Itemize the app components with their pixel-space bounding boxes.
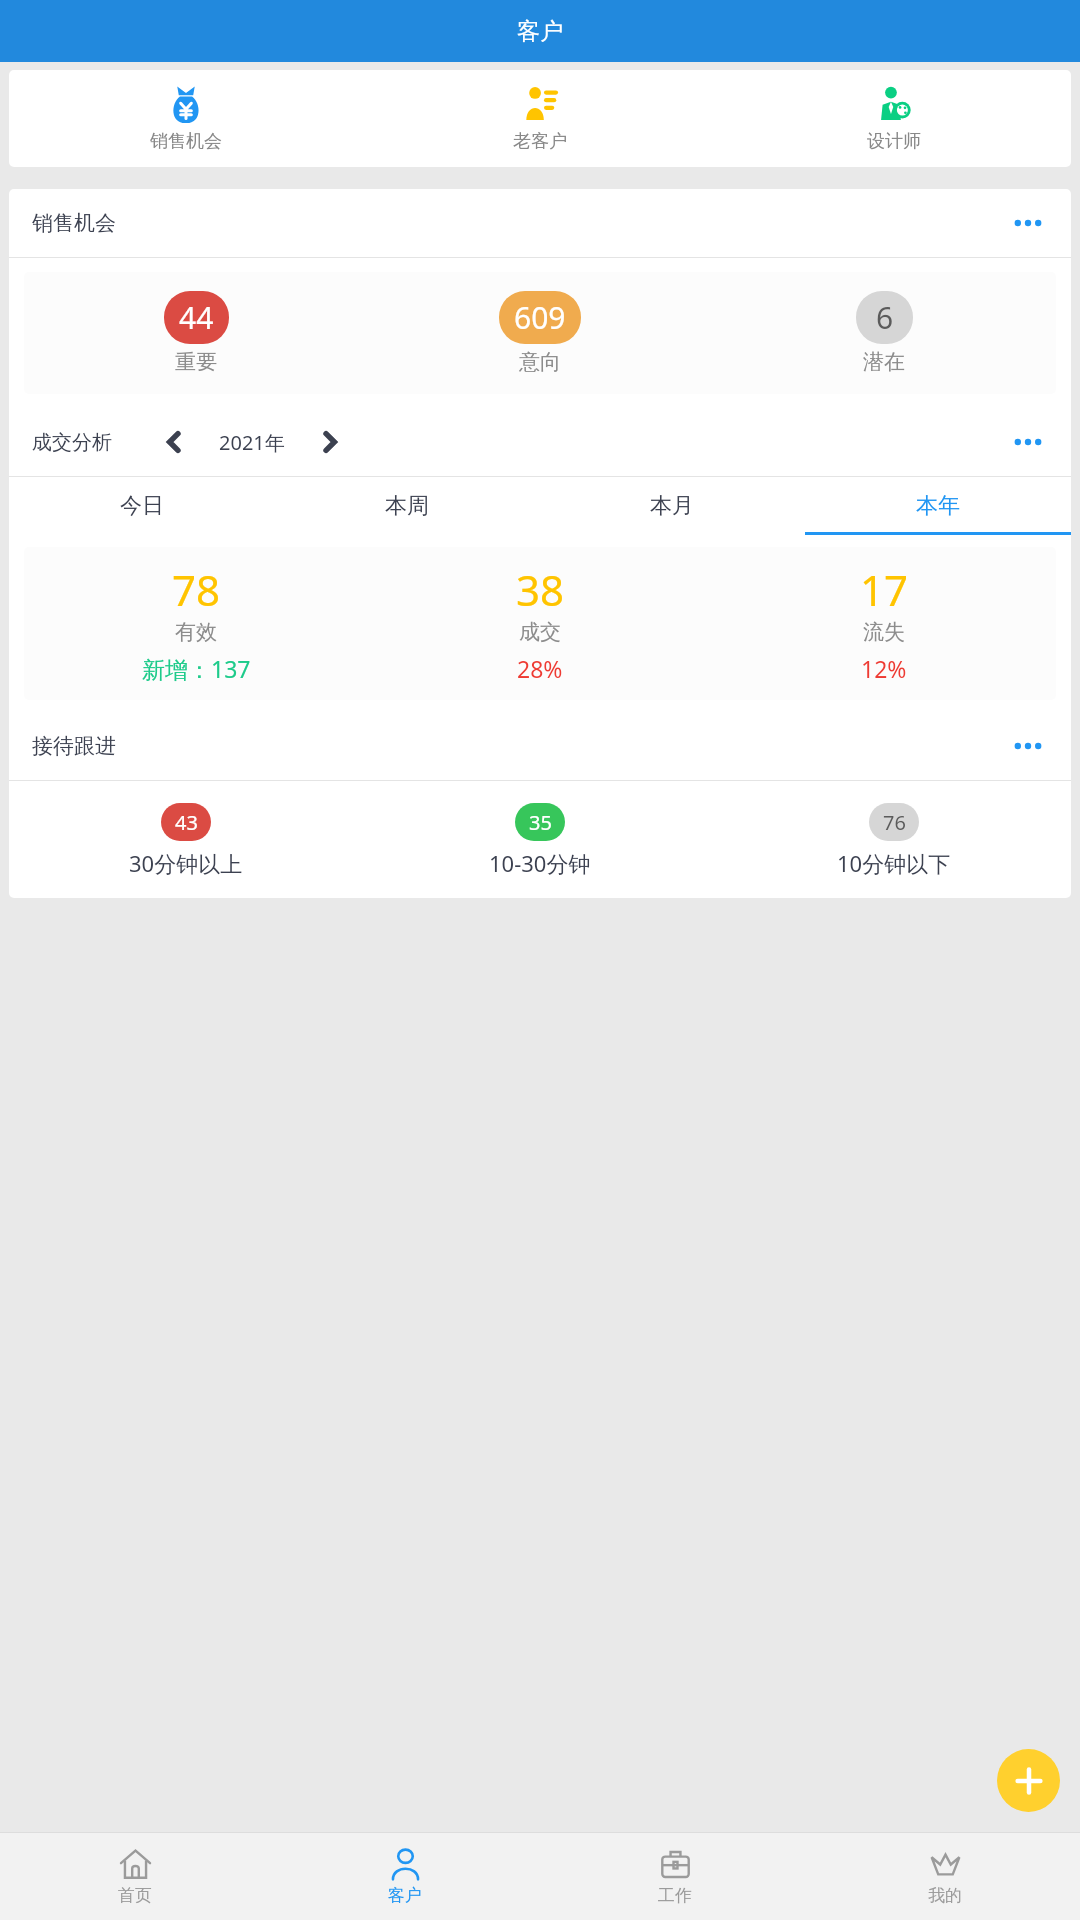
button[interactable]: 38 xyxy=(368,561,712,684)
button[interactable]: 78 xyxy=(24,561,368,684)
staticText: 本周 xyxy=(385,492,429,520)
button[interactable]: 我的 xyxy=(810,1833,1080,1920)
staticText: 10分钟以下 xyxy=(837,848,951,878)
staticText: 30分钟以上 xyxy=(129,848,243,878)
staticText: 设计师 xyxy=(867,130,921,153)
button[interactable]: 44 xyxy=(24,291,368,375)
staticText: 35 xyxy=(529,809,552,836)
button[interactable]: 首页 xyxy=(0,1833,270,1920)
staticText: 10-30分钟 xyxy=(489,848,591,878)
staticText: 78 xyxy=(172,561,221,618)
staticText: 2021年 xyxy=(219,429,285,456)
button[interactable]: 本周 xyxy=(274,477,539,535)
staticText: 6 xyxy=(876,297,894,338)
staticText: 38 xyxy=(516,561,565,618)
staticText: 今日 xyxy=(120,492,164,520)
staticText: 28% xyxy=(517,653,563,684)
button[interactable]: 工作 xyxy=(540,1833,810,1920)
button[interactable]: 609 xyxy=(368,291,712,375)
staticText: 销售机会 xyxy=(32,210,116,236)
button[interactable]: 76 xyxy=(717,803,1071,878)
button[interactable]: 17 xyxy=(712,561,1056,684)
button[interactable]: 老客户 xyxy=(363,70,717,167)
staticText: 成交分析 xyxy=(32,430,112,455)
staticText: 本月 xyxy=(650,492,694,520)
staticText: 成交 xyxy=(519,619,561,645)
button[interactable]: 今日 xyxy=(9,477,274,535)
button[interactable]: 上一年 xyxy=(152,420,196,464)
button[interactable]: 35 xyxy=(363,803,717,878)
staticText: 44 xyxy=(179,297,214,338)
staticText: 客户 xyxy=(517,17,563,46)
staticText: 12% xyxy=(861,653,907,684)
button[interactable]: 43 xyxy=(9,803,363,878)
button[interactable]: 下一年 xyxy=(308,420,352,464)
staticText: 意向 xyxy=(519,349,561,375)
staticText: 接待跟进 xyxy=(32,733,116,759)
staticText: 新增：137 xyxy=(142,653,251,684)
staticText: 销售机会 xyxy=(150,130,222,153)
staticText: 老客户 xyxy=(513,130,567,153)
button[interactable]: 本年 xyxy=(805,477,1071,535)
button[interactable]: 6 xyxy=(712,291,1056,375)
staticText: 43 xyxy=(175,809,198,836)
staticText: 609 xyxy=(514,297,566,338)
staticText: 重要 xyxy=(175,349,217,375)
button[interactable]: 更多 xyxy=(1008,726,1048,766)
staticText: 76 xyxy=(883,809,906,836)
button[interactable]: 更多 xyxy=(1008,422,1048,462)
staticText: 客户 xyxy=(388,1885,422,1906)
staticText: 有效 xyxy=(175,619,217,645)
button[interactable]: 客户 xyxy=(270,1833,540,1920)
button[interactable]: 本月 xyxy=(539,477,805,535)
button[interactable]: 设计师 xyxy=(717,70,1071,167)
button[interactable]: 销售机会 xyxy=(9,70,363,167)
staticText: 工作 xyxy=(658,1885,692,1906)
button[interactable]: 新增 xyxy=(997,1749,1060,1812)
staticText: 本年 xyxy=(916,492,960,520)
button[interactable]: 更多 xyxy=(1008,203,1048,243)
staticText: 流失 xyxy=(863,619,905,645)
staticText: 17 xyxy=(860,561,909,618)
staticText: 首页 xyxy=(118,1885,152,1906)
staticText: 我的 xyxy=(928,1885,962,1906)
staticText: 潜在 xyxy=(863,349,905,375)
